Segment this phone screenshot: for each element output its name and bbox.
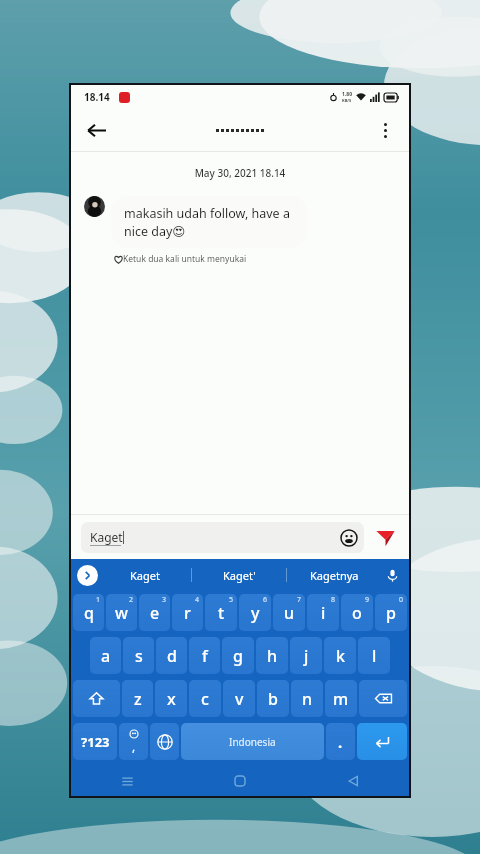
staticText: 18.14 xyxy=(84,90,110,104)
staticText: n xyxy=(302,688,313,710)
staticText: . xyxy=(338,732,343,752)
staticText: v xyxy=(235,688,244,710)
button[interactable]: Emoji xyxy=(339,528,359,548)
button[interactable]: Emoji and comma xyxy=(119,723,148,760)
button[interactable]: g xyxy=(222,637,254,674)
button[interactable]: Backspace xyxy=(359,680,407,717)
button[interactable]: a xyxy=(90,637,121,674)
staticText: u xyxy=(284,602,295,624)
staticText: e xyxy=(150,602,160,624)
staticText: l xyxy=(372,645,377,667)
button[interactable]: Kaget xyxy=(98,559,191,591)
button[interactable]: o xyxy=(341,594,373,631)
button[interactable]: d xyxy=(156,637,187,674)
button[interactable]: v xyxy=(223,680,255,717)
staticText: y xyxy=(251,602,260,624)
button[interactable]: m xyxy=(325,680,357,717)
staticText: Indonesia xyxy=(229,735,276,749)
button[interactable]: j xyxy=(290,637,322,674)
staticText: x xyxy=(167,688,176,710)
staticText: s xyxy=(135,645,143,667)
button[interactable]: w xyxy=(106,594,137,631)
button[interactable]: k xyxy=(324,637,356,674)
button[interactable]: Voice input xyxy=(381,559,403,591)
button[interactable]: Change language xyxy=(150,723,179,760)
staticText: makasih udah follow, have a nice day😍 xyxy=(124,205,294,239)
staticText: Kaget xyxy=(130,568,160,583)
staticText: q xyxy=(84,602,94,624)
button[interactable]: i xyxy=(307,594,339,631)
staticText: d xyxy=(167,645,177,667)
button[interactable]: s xyxy=(123,637,154,674)
button[interactable]: p xyxy=(375,594,407,631)
button[interactable]: ?123 xyxy=(73,723,117,760)
staticText: h xyxy=(267,645,278,667)
staticText: k xyxy=(336,645,345,667)
staticText: 9 xyxy=(365,595,370,605)
button[interactable]: l xyxy=(358,637,390,674)
staticText: i xyxy=(321,602,326,624)
staticText: KB/S xyxy=(342,98,352,103)
staticText: w xyxy=(115,602,128,624)
staticText: ?123 xyxy=(81,733,110,751)
button[interactable]: c xyxy=(189,680,221,717)
staticText: p xyxy=(386,602,396,624)
button[interactable]: q xyxy=(73,594,104,631)
button[interactable]: Back xyxy=(79,113,113,147)
button[interactable]: Kaget' xyxy=(192,559,286,591)
staticText: 0 xyxy=(399,595,404,605)
button[interactable]: More options xyxy=(369,114,401,146)
staticText: Kagetnya xyxy=(310,568,359,583)
button[interactable]: e xyxy=(139,594,170,631)
staticText: , xyxy=(132,738,136,754)
button[interactable]: z xyxy=(122,680,153,717)
button[interactable]: Recent apps xyxy=(71,766,183,796)
staticText: a xyxy=(101,645,111,667)
button[interactable]: n xyxy=(291,680,323,717)
staticText: 2 xyxy=(129,595,134,605)
staticText: t xyxy=(218,602,225,624)
button[interactable]: Enter xyxy=(357,723,407,760)
button[interactable]: Kaget xyxy=(81,522,364,553)
staticText: 3 xyxy=(162,595,167,605)
staticText: 6 xyxy=(263,595,268,605)
staticText: May 30, 2021 18.14 xyxy=(71,166,409,180)
staticText: c xyxy=(201,688,209,710)
staticText: o xyxy=(352,602,362,624)
staticText: g xyxy=(233,645,243,667)
button[interactable]: f xyxy=(189,637,220,674)
button[interactable]: x xyxy=(155,680,187,717)
button[interactable]: Send xyxy=(371,523,399,551)
staticText: z xyxy=(134,688,142,710)
staticText: 5 xyxy=(229,595,234,605)
staticText: r xyxy=(184,602,191,624)
button[interactable]: y xyxy=(239,594,271,631)
button[interactable]: . xyxy=(326,723,355,760)
button[interactable]: Back xyxy=(296,766,409,796)
button[interactable]: r xyxy=(172,594,203,631)
staticText: b xyxy=(268,688,278,710)
staticText: m xyxy=(333,688,349,710)
button[interactable]: t xyxy=(205,594,237,631)
staticText: 1.80 xyxy=(342,91,352,98)
staticText: 7 xyxy=(297,595,302,605)
button[interactable]: Indonesia xyxy=(181,723,324,760)
button[interactable]: h xyxy=(256,637,288,674)
staticText: Kaget' xyxy=(223,568,256,583)
staticText: j xyxy=(304,645,309,667)
staticText: 8 xyxy=(331,595,336,605)
staticText: f xyxy=(202,645,208,667)
button[interactable]: u xyxy=(273,594,305,631)
button[interactable]: Kagetnya xyxy=(287,559,381,591)
staticText: Kaget xyxy=(90,529,123,545)
button[interactable]: b xyxy=(257,680,289,717)
staticText: 4 xyxy=(195,595,200,605)
staticText: Ketuk dua kali untuk menyukai xyxy=(123,253,247,265)
button[interactable]: Expand xyxy=(77,565,98,586)
button[interactable]: Home xyxy=(183,766,296,796)
staticText: 1 xyxy=(96,595,101,605)
button[interactable]: makasih udah follow, have a nice day😍 xyxy=(111,196,307,248)
button[interactable]: Shift xyxy=(73,680,120,717)
